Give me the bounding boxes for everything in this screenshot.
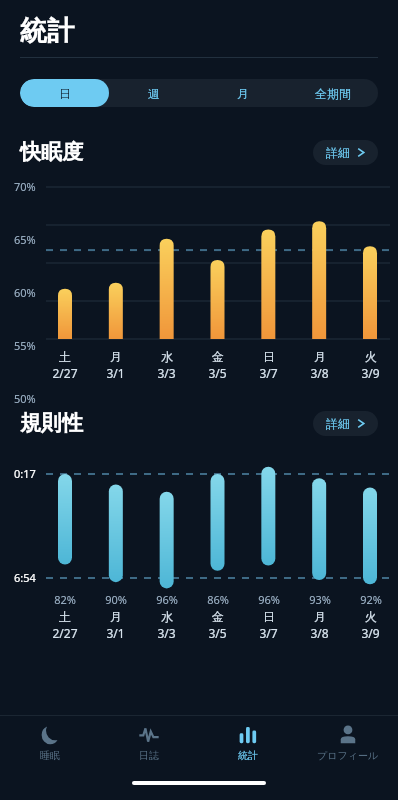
staticText: 82% — [54, 592, 76, 607]
staticText: 火 — [365, 609, 377, 624]
staticText: 日 — [263, 609, 275, 624]
button[interactable]: 全期間 — [288, 79, 378, 107]
staticText: 日 — [59, 86, 71, 101]
staticText: 週 — [148, 86, 160, 101]
staticText: 詳細 — [326, 416, 350, 431]
staticText: 3/3 — [157, 625, 176, 641]
staticText: 86% — [207, 592, 229, 607]
staticText: 3/5 — [208, 625, 227, 641]
button[interactable]: 統計 — [198, 716, 298, 774]
staticText: 日 — [263, 349, 275, 364]
staticText: 96% — [258, 592, 280, 607]
staticText: 日誌 — [139, 749, 159, 762]
button[interactable]: 詳細 — [313, 411, 378, 436]
staticText: 統計 — [20, 14, 74, 48]
staticText: 水 — [161, 349, 173, 364]
staticText: 月 — [110, 349, 122, 364]
button[interactable]: 詳細 — [313, 140, 378, 165]
staticText: 3/8 — [310, 625, 329, 641]
button[interactable]: 日 — [20, 79, 109, 107]
staticText: プロフィール — [317, 749, 379, 762]
staticText: 3/8 — [310, 365, 329, 381]
staticText: 3/9 — [361, 625, 380, 641]
staticText: 92% — [360, 592, 382, 607]
staticText: 詳細 — [326, 145, 350, 160]
staticText: 55% — [14, 338, 36, 353]
staticText: 水 — [161, 609, 173, 624]
staticText: 火 — [365, 349, 377, 364]
staticText: 3/1 — [106, 625, 125, 641]
staticText: 規則性 — [20, 410, 83, 436]
staticText: 土 — [59, 349, 71, 364]
button[interactable]: プロフィール — [298, 716, 398, 774]
staticText: 2/27 — [52, 365, 78, 381]
staticText: 96% — [156, 592, 178, 607]
staticText: 全期間 — [315, 86, 351, 101]
button[interactable]: 睡眠 — [0, 716, 99, 774]
staticText: 2/27 — [52, 625, 78, 641]
staticText: 93% — [309, 592, 331, 607]
staticText: 金 — [212, 349, 224, 364]
staticText: 6:54 — [14, 570, 36, 585]
staticText: 65% — [14, 232, 36, 247]
staticText: 3/7 — [259, 365, 278, 381]
staticText: 月 — [314, 349, 326, 364]
staticText: 快眠度 — [20, 139, 83, 165]
staticText: 3/1 — [106, 365, 125, 381]
button[interactable]: 日誌 — [99, 716, 198, 774]
staticText: 月 — [110, 609, 122, 624]
staticText: 3/9 — [361, 365, 380, 381]
staticText: 90% — [105, 592, 127, 607]
staticText: 月 — [237, 86, 249, 101]
staticText: 統計 — [238, 749, 258, 762]
staticText: 3/7 — [259, 625, 278, 641]
button[interactable]: 月 — [198, 79, 288, 107]
button[interactable]: 週 — [109, 79, 198, 107]
staticText: 土 — [59, 609, 71, 624]
staticText: 金 — [212, 609, 224, 624]
staticText: 70% — [14, 179, 36, 194]
staticText: 50% — [14, 391, 36, 406]
staticText: 3/3 — [157, 365, 176, 381]
staticText: 3/5 — [208, 365, 227, 381]
staticText: 睡眠 — [40, 749, 60, 762]
staticText: 月 — [314, 609, 326, 624]
staticText: 60% — [14, 285, 36, 300]
staticText: 0:17 — [14, 466, 36, 481]
